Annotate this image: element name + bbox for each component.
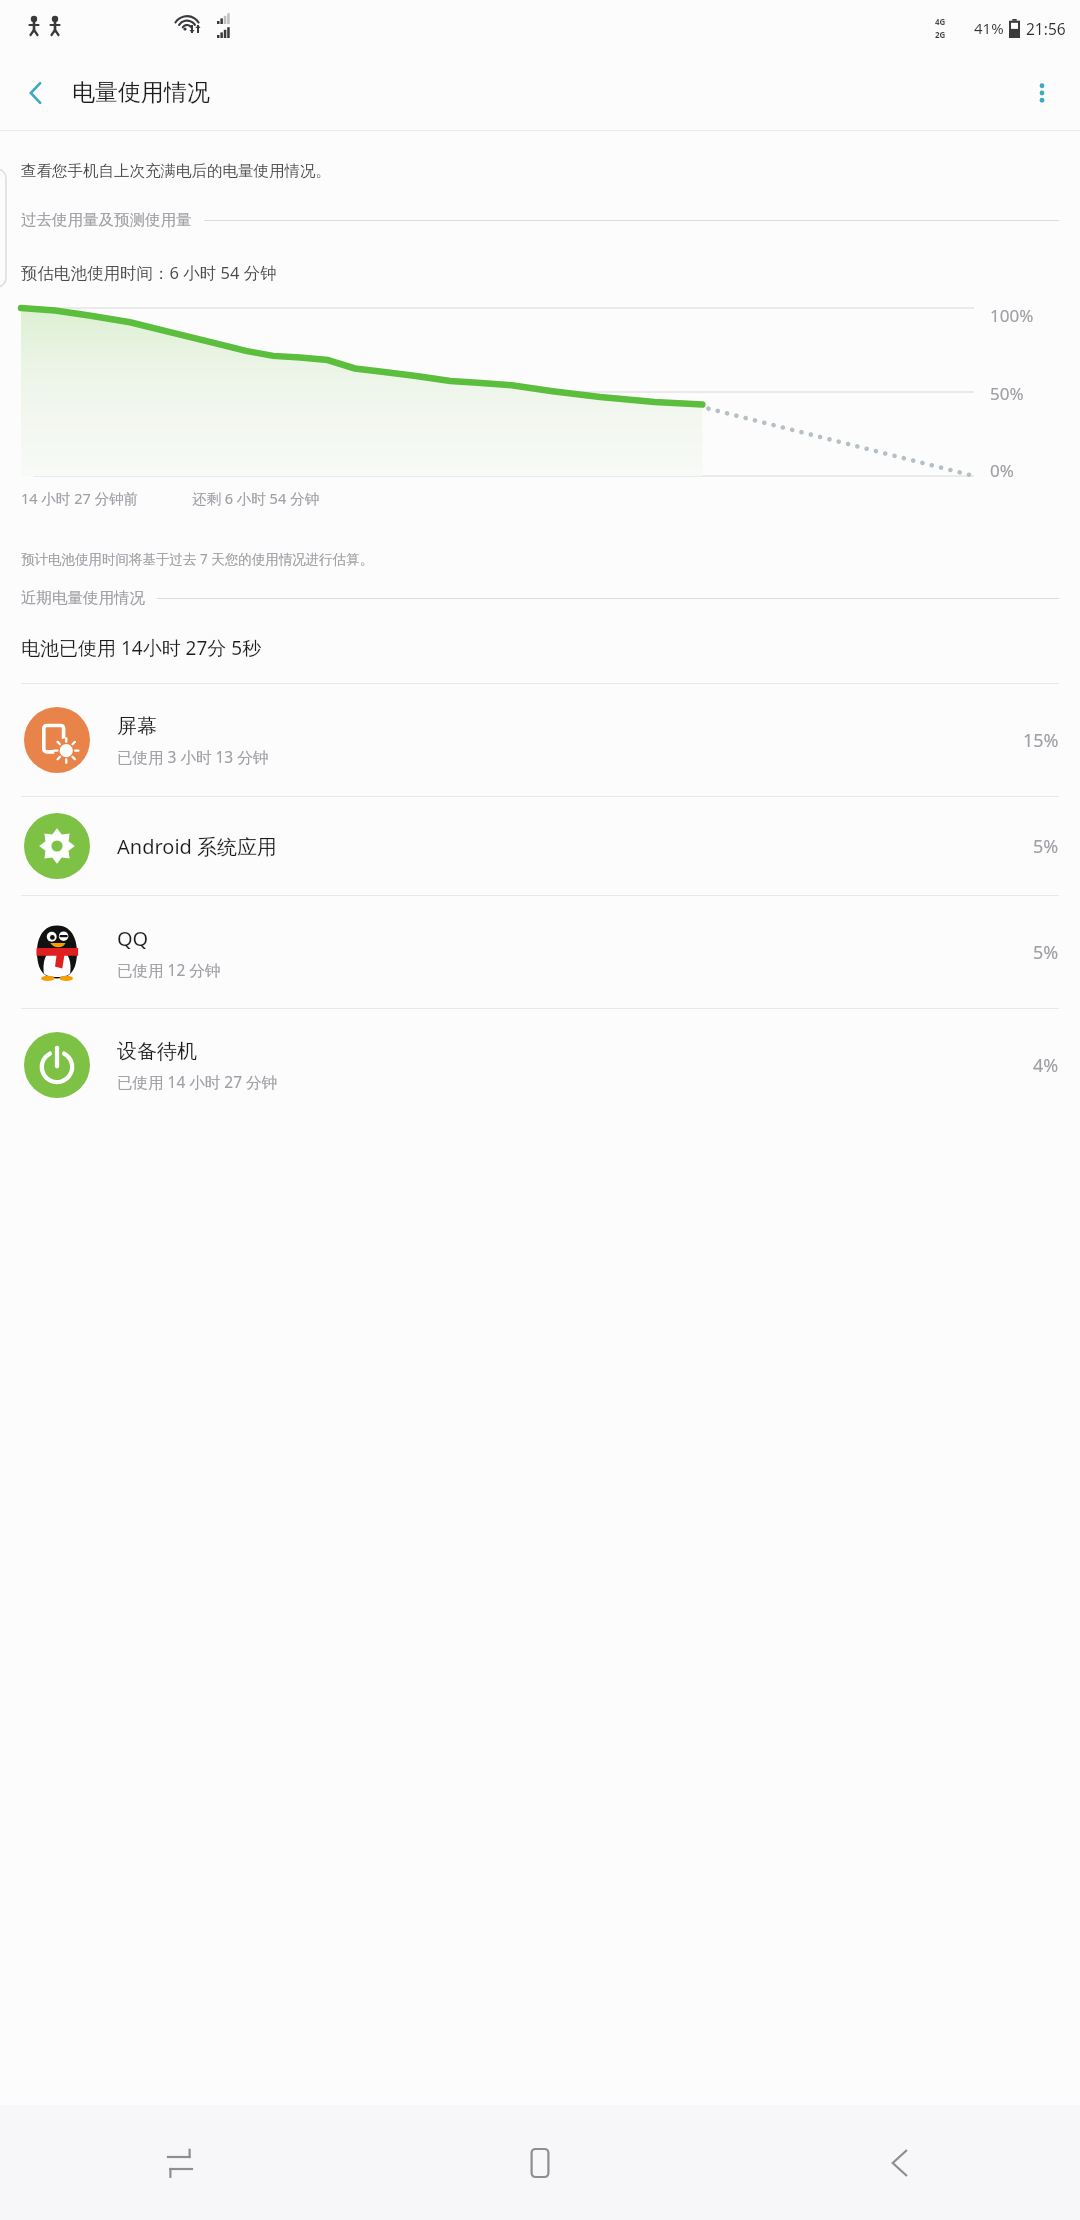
staticText: 0% xyxy=(990,459,1014,482)
staticText: 已使用 3 小时 13 分钟 xyxy=(117,746,269,767)
staticText: 设备待机 xyxy=(117,1039,197,1064)
staticText: 5% xyxy=(1033,940,1059,965)
staticText: 已使用 12 分钟 xyxy=(117,959,221,980)
staticText: 4% xyxy=(1033,1053,1059,1078)
button[interactable]: More options xyxy=(1014,65,1070,121)
button[interactable]: 设备待机 xyxy=(0,1009,1080,1121)
button[interactable]: QQ xyxy=(0,896,1080,1008)
button[interactable]: 屏幕 xyxy=(0,684,1080,796)
staticText: 21:56 xyxy=(1026,18,1066,39)
staticText: 还剩 6 小时 54 分钟 xyxy=(192,488,319,508)
staticText: QQ xyxy=(117,925,149,952)
staticText: 100% xyxy=(990,304,1034,327)
staticText: 4G xyxy=(935,16,946,27)
staticText: 屏幕 xyxy=(117,714,157,739)
staticText: 已使用 14 小时 27 分钟 xyxy=(117,1071,278,1092)
staticText: 14 小时 27 分钟前 xyxy=(21,488,138,508)
staticText: 电量使用情况 xyxy=(72,78,210,107)
staticText: Android 系统应用 xyxy=(117,833,278,860)
button[interactable]: Back xyxy=(8,65,64,121)
button[interactable]: Back xyxy=(720,2105,1080,2220)
staticText: 过去使用量及预测使用量 xyxy=(21,210,192,230)
staticText: 电池已使用 14小时 27分 5秒 xyxy=(21,635,262,661)
staticText: 近期电量使用情况 xyxy=(21,588,145,608)
staticText: 5% xyxy=(1033,834,1059,859)
staticText: 预计电池使用时间将基于过去 7 天您的使用情况进行估算。 xyxy=(21,550,374,568)
staticText: 查看您手机自上次充满电后的电量使用情况。 xyxy=(21,161,331,181)
staticText: 15% xyxy=(1023,728,1059,753)
staticText: 2G xyxy=(935,29,946,40)
button[interactable]: Home xyxy=(360,2105,720,2220)
staticText: 预估电池使用时间：6 小时 54 分钟 xyxy=(21,261,277,284)
staticText: 41% xyxy=(974,18,1004,38)
button[interactable]: Recent apps xyxy=(0,2105,360,2220)
button[interactable]: Android 系统应用 xyxy=(0,797,1080,895)
staticText: 50% xyxy=(990,382,1024,405)
